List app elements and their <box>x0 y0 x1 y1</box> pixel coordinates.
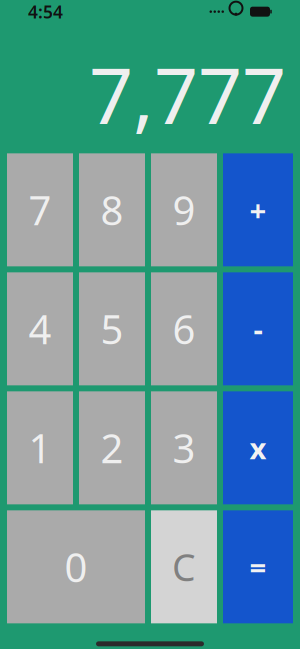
button[interactable]: 0 <box>7 510 145 623</box>
button[interactable]: x <box>223 391 293 504</box>
staticText: 9 <box>172 183 195 236</box>
button[interactable]: 5 <box>79 272 145 385</box>
staticText: 3 <box>172 421 195 474</box>
button[interactable]: - <box>223 272 293 385</box>
staticText: 4:54 <box>28 0 63 23</box>
staticText: 1 <box>28 421 51 474</box>
staticText: 0 <box>64 540 87 593</box>
button[interactable]: 7 <box>7 153 73 266</box>
button[interactable]: 4 <box>7 272 73 385</box>
staticText: 7,777 <box>89 43 286 145</box>
staticText: = <box>249 547 266 586</box>
staticText: 7 <box>28 183 51 236</box>
staticText: + <box>249 190 266 229</box>
button[interactable]: 2 <box>79 391 145 504</box>
button[interactable]: 9 <box>151 153 217 266</box>
button[interactable]: + <box>223 153 293 266</box>
staticText: 5 <box>100 302 123 355</box>
button[interactable]: 6 <box>151 272 217 385</box>
staticText: C <box>172 542 196 592</box>
staticText: 2 <box>100 421 123 474</box>
staticText: 8 <box>100 183 123 236</box>
button[interactable]: = <box>223 510 293 623</box>
staticText: x <box>249 428 266 467</box>
button[interactable]: C <box>151 510 217 623</box>
button[interactable]: 3 <box>151 391 217 504</box>
staticText: 4 <box>28 302 51 355</box>
button[interactable]: 8 <box>79 153 145 266</box>
staticText: 6 <box>172 302 195 355</box>
button[interactable]: 1 <box>7 391 73 504</box>
staticText: - <box>253 309 262 348</box>
